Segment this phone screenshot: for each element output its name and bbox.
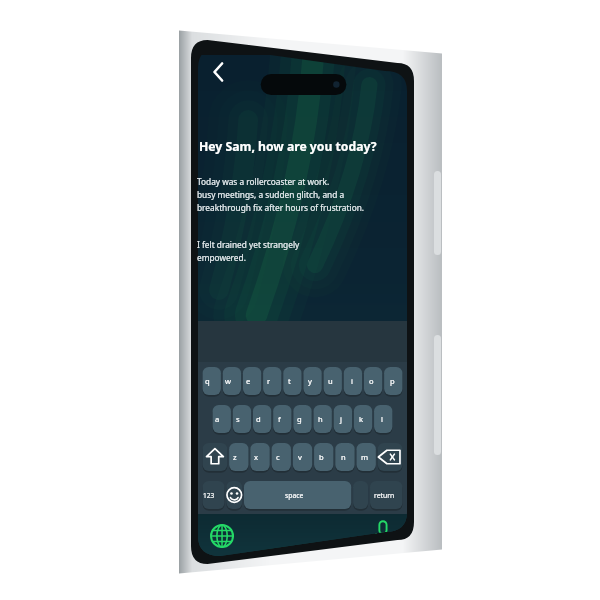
staticText: e — [246, 376, 251, 386]
staticText: space — [285, 491, 304, 500]
staticText: m — [361, 452, 369, 462]
staticText: s — [236, 414, 240, 424]
button[interactable]: 123 — [198, 481, 220, 509]
button[interactable]: o — [362, 367, 381, 395]
button[interactable]: v — [290, 443, 310, 471]
staticText: h — [318, 414, 323, 424]
staticText: w — [225, 376, 231, 386]
staticText: v — [298, 452, 302, 462]
staticText: f — [278, 414, 281, 424]
staticText: 123 — [203, 491, 215, 500]
button[interactable]: m — [355, 443, 375, 471]
button[interactable]: c — [268, 443, 288, 471]
button[interactable]: q — [198, 367, 217, 395]
staticText: b — [319, 452, 324, 462]
staticText: Hey Sam, how are you today? — [199, 138, 399, 155]
button[interactable]: h — [311, 405, 330, 433]
staticText: o — [369, 376, 374, 386]
staticText: g — [297, 414, 302, 424]
button[interactable]: p — [383, 367, 402, 395]
button[interactable]: Change keyboard language — [197, 521, 227, 551]
button[interactable]: k — [352, 405, 371, 433]
button[interactable]: Bookmark — [368, 38, 396, 66]
button[interactable]: Journal entry editor — [195, 120, 407, 300]
button[interactable]: t — [280, 367, 299, 395]
button[interactable]: Dictate — [367, 517, 397, 547]
button[interactable]: b — [311, 443, 331, 471]
button[interactable]: return — [368, 481, 401, 509]
button[interactable]: s — [228, 405, 247, 433]
button[interactable]: y — [300, 367, 319, 395]
button[interactable]: Emoji — [222, 481, 238, 509]
staticText: k — [359, 414, 364, 424]
button[interactable]: u — [321, 367, 340, 395]
staticText: n — [341, 452, 346, 462]
button[interactable]: n — [333, 443, 353, 471]
staticText: t — [288, 376, 291, 386]
button[interactable]: l — [372, 405, 391, 433]
staticText: r — [267, 376, 271, 386]
staticText: q — [205, 376, 210, 386]
button[interactable]: Backspace — [376, 443, 401, 471]
button[interactable]: space — [240, 481, 349, 509]
staticText: x — [254, 452, 259, 462]
staticText: u — [328, 376, 333, 386]
staticText: j — [340, 414, 342, 424]
staticText: l — [381, 414, 383, 424]
button[interactable]: z — [225, 443, 245, 471]
staticText: a — [215, 414, 220, 424]
staticText: d — [256, 414, 261, 424]
staticText: return — [374, 491, 395, 500]
staticText: i — [351, 376, 353, 386]
button[interactable]: e — [239, 367, 258, 395]
staticText: Today was a rollercoaster at work. busy … — [197, 176, 405, 214]
staticText: p — [390, 376, 395, 386]
staticText: I felt drained yet strangely empowered. — [197, 239, 405, 264]
button[interactable]: f — [270, 405, 289, 433]
button[interactable]: i — [342, 367, 361, 395]
button[interactable]: r — [259, 367, 278, 395]
button[interactable]: Back — [198, 60, 228, 88]
staticText: y — [308, 376, 312, 386]
staticText: z — [233, 452, 237, 462]
button[interactable]: j — [331, 405, 350, 433]
button[interactable]: a — [208, 405, 227, 433]
button[interactable]: Shift — [198, 443, 223, 471]
button[interactable]: x — [246, 443, 266, 471]
button[interactable]: g — [290, 405, 309, 433]
button[interactable]: w — [218, 367, 237, 395]
staticText: c — [276, 452, 280, 462]
button[interactable]: Period — [351, 481, 366, 509]
button[interactable]: d — [249, 405, 268, 433]
